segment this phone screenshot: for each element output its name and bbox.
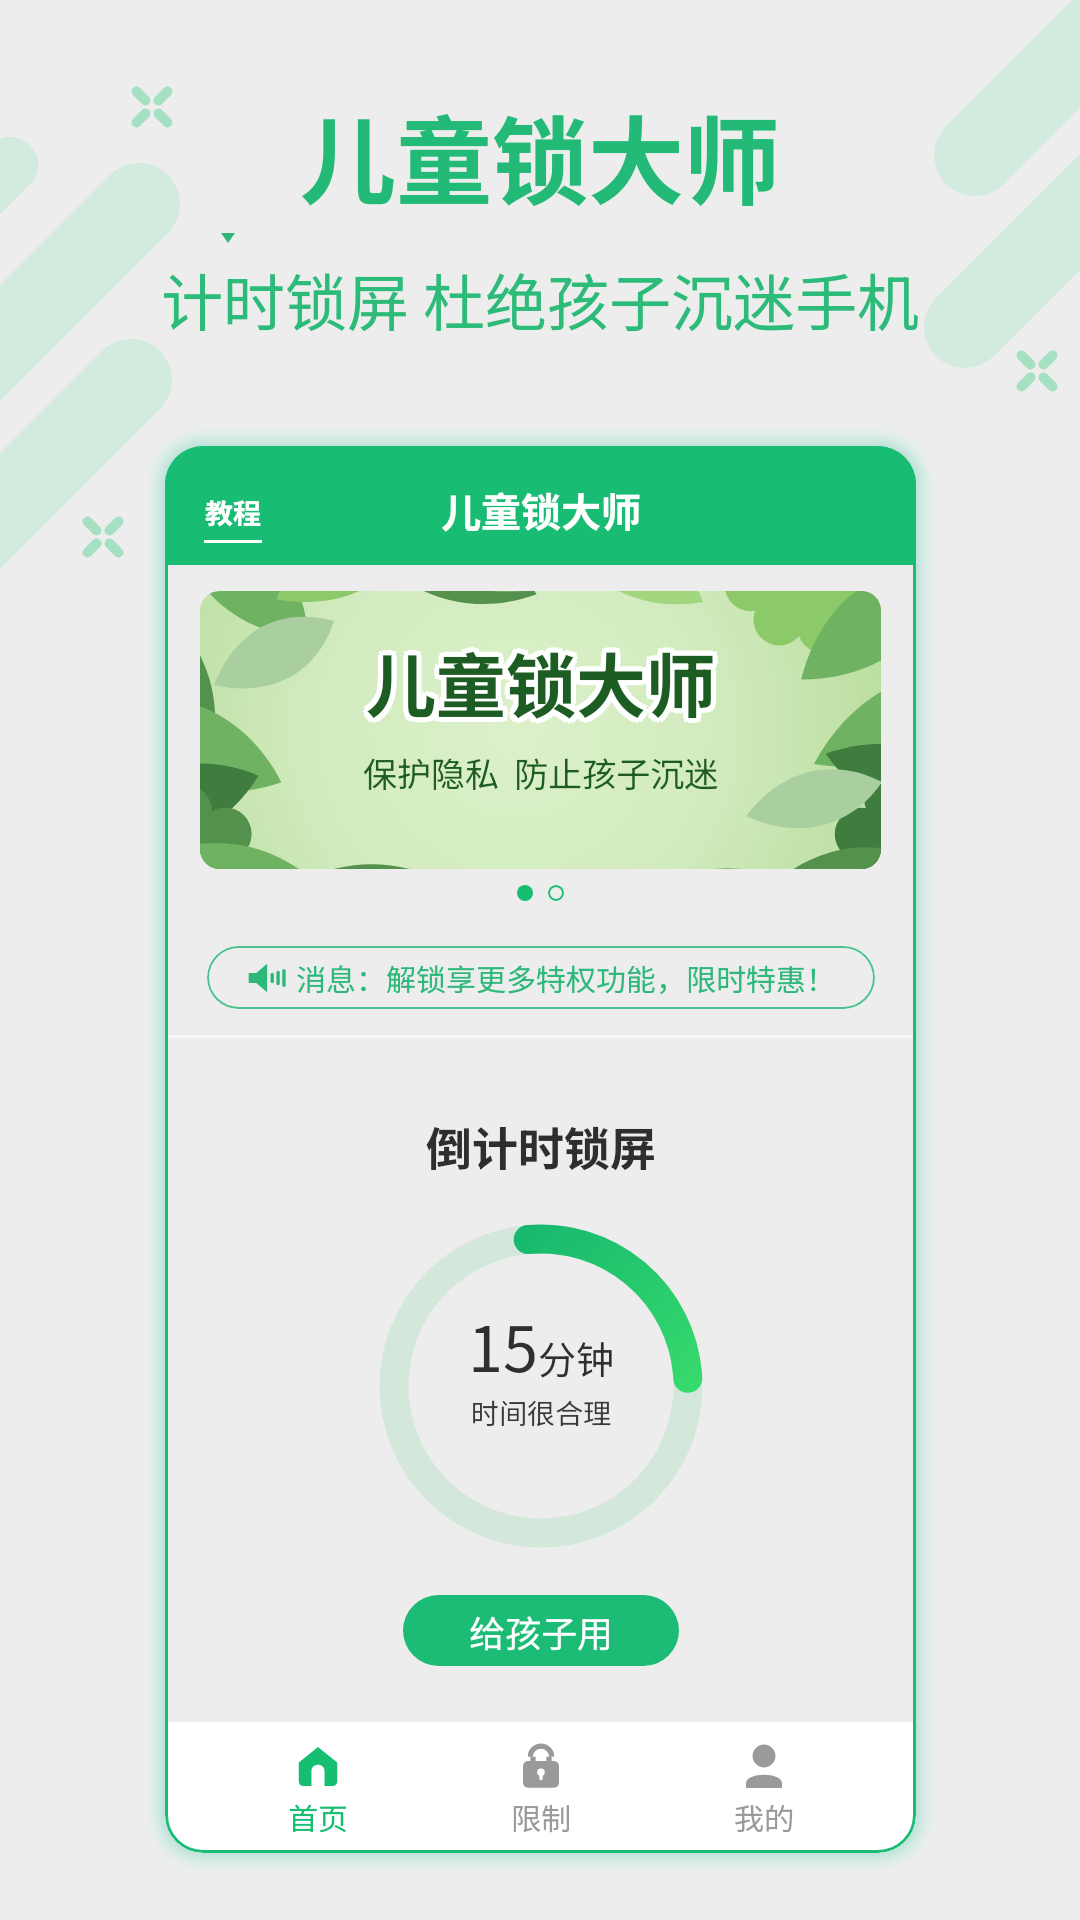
staticText: 儿童锁大师 bbox=[362, 635, 712, 736]
staticText: 儿童锁大师 bbox=[366, 626, 716, 727]
button[interactable]: 给孩子用 bbox=[403, 1595, 679, 1666]
staticText: 首页 bbox=[288, 1795, 348, 1838]
button[interactable]: 教程 bbox=[204, 492, 262, 543]
staticText: 儿童锁大师 bbox=[362, 627, 712, 728]
staticText: 儿童锁大师 bbox=[300, 86, 780, 225]
staticText: 儿童锁大师 bbox=[361, 631, 711, 732]
staticText: 儿童锁大师 bbox=[366, 631, 716, 732]
staticText: 儿童锁大师 bbox=[441, 481, 641, 539]
staticText: 儿童锁大师 bbox=[371, 631, 721, 732]
staticText: 我的 bbox=[734, 1795, 794, 1838]
staticText: 教程 bbox=[205, 492, 262, 533]
staticText: 儿童锁大师 bbox=[366, 636, 716, 737]
staticText: 保护隐私 防止孩子沉迷 bbox=[363, 748, 719, 797]
button[interactable]: 儿童锁大师 bbox=[200, 591, 881, 869]
staticText: 分钟 bbox=[538, 1330, 615, 1385]
button[interactable]: 我的 bbox=[652, 1731, 875, 1844]
button[interactable]: 消息：解锁享更多特权功能，限时特惠！ bbox=[207, 946, 875, 1009]
staticText: 时间很合理 bbox=[471, 1392, 612, 1433]
staticText: 给孩子用 bbox=[469, 1605, 614, 1657]
staticText: 倒计时锁屏 bbox=[426, 1113, 656, 1180]
button[interactable]: 首页 bbox=[206, 1731, 429, 1844]
staticText: 计时锁屏 杜绝孩子沉迷手机 bbox=[161, 254, 919, 344]
button[interactable]: 限制 bbox=[429, 1731, 652, 1844]
staticText: 15 bbox=[468, 1299, 538, 1390]
staticText: 儿童锁大师 bbox=[370, 627, 720, 728]
staticText: 限制 bbox=[511, 1795, 571, 1838]
staticText: 儿童锁大师 bbox=[370, 635, 720, 736]
staticText: 消息：解锁享更多特权功能，限时特惠！ bbox=[296, 956, 836, 999]
